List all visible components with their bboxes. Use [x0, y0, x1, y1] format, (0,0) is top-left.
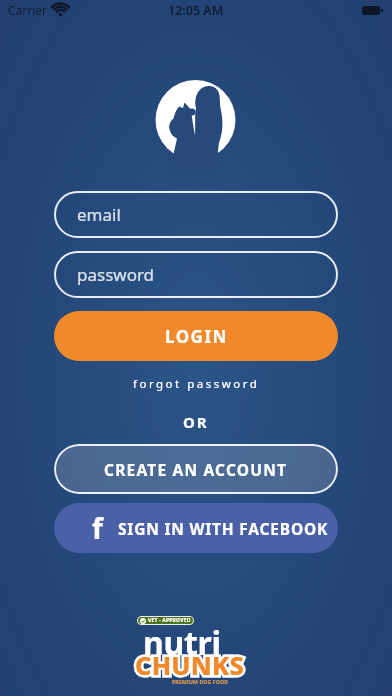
staticText: CREATE AN ACCOUNT	[104, 459, 288, 480]
staticText: VET - APPROVED	[148, 617, 191, 624]
staticText: LOGIN	[165, 325, 228, 348]
button[interactable]: CREATE AN ACCOUNT	[54, 444, 338, 494]
staticText: 12:05 AM	[168, 2, 224, 19]
button[interactable]: password	[54, 251, 338, 298]
staticText: CHUNKS	[135, 648, 244, 683]
staticText: f	[92, 509, 103, 547]
staticText: CHUNKS	[135, 648, 244, 683]
staticText: password	[77, 263, 155, 286]
button[interactable]: forgot password	[133, 376, 260, 392]
staticText: SIGN IN WITH FACEBOOK	[118, 518, 329, 539]
button[interactable]: LOGIN	[54, 311, 338, 361]
staticText: OR	[183, 412, 209, 432]
staticText: Carrier	[8, 2, 48, 18]
button[interactable]: email	[54, 191, 338, 238]
staticText: PREMIUM DOG FOOD	[172, 678, 229, 685]
button[interactable]: f	[54, 503, 338, 553]
staticText: email	[77, 203, 121, 226]
staticText: nutri	[143, 621, 221, 665]
